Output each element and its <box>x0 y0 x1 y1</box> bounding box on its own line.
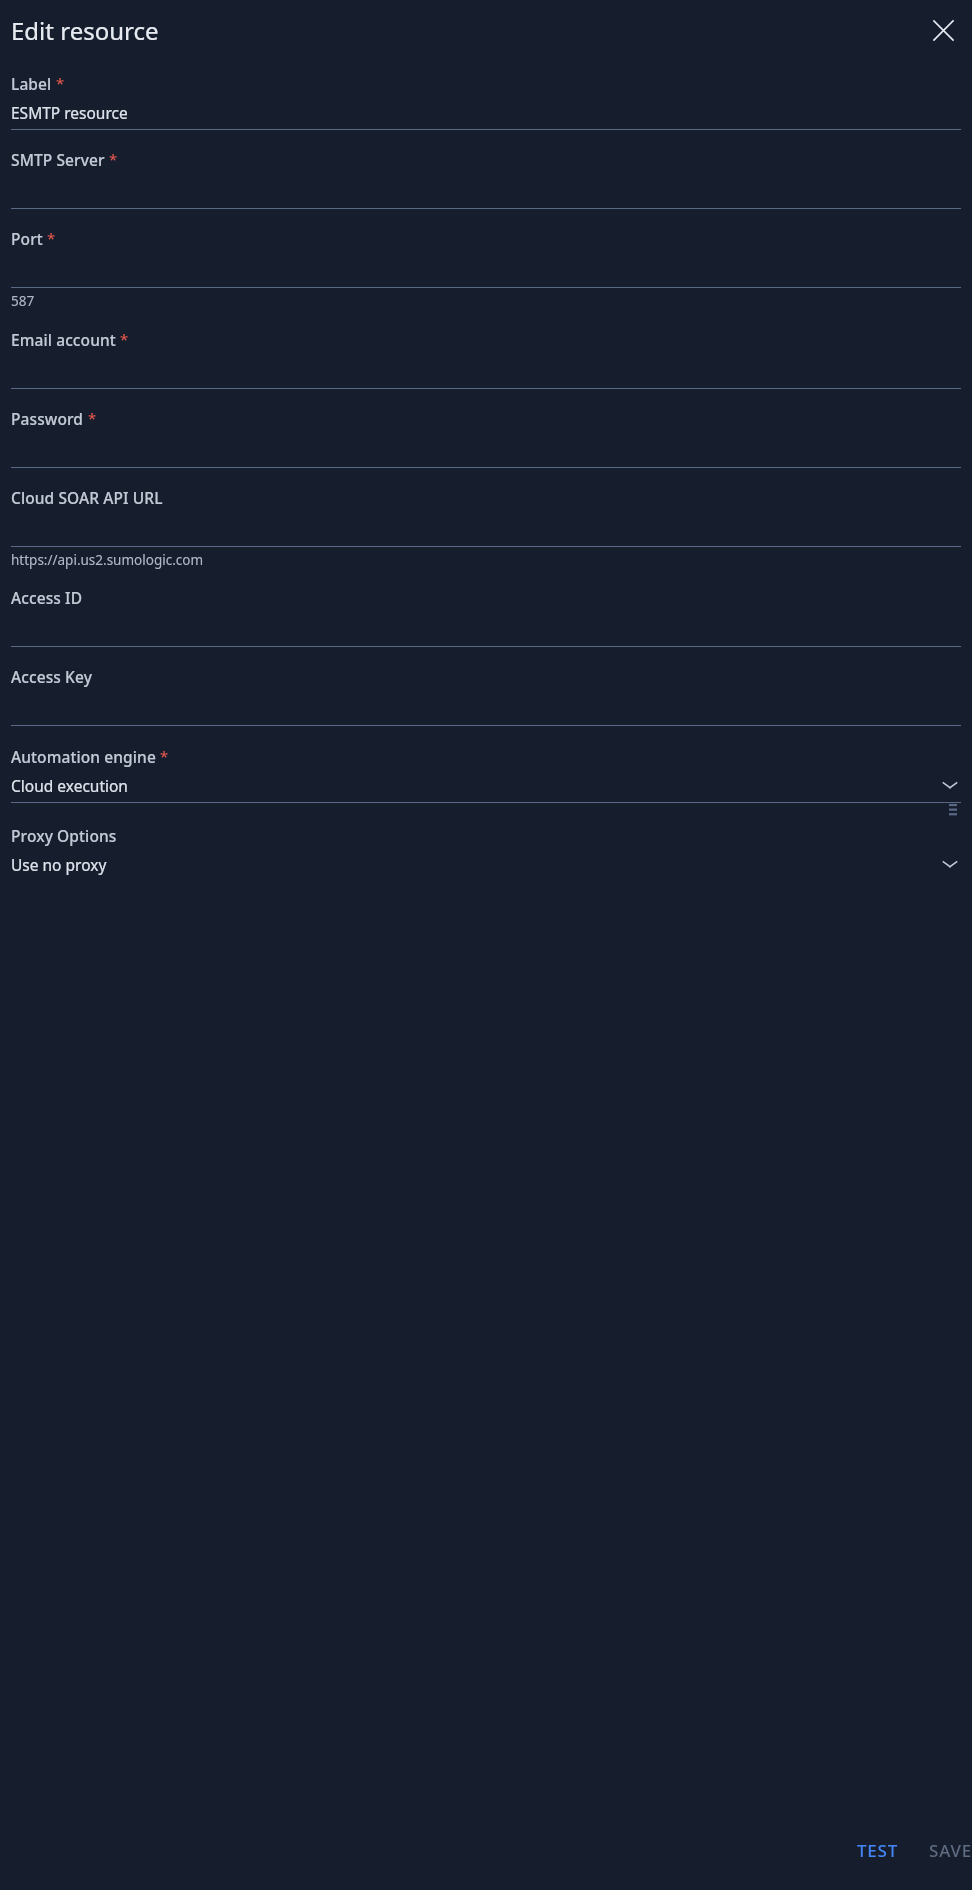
staticText: Proxy Options <box>11 825 117 846</box>
button[interactable]: Access ID <box>11 587 961 647</box>
staticText: Label <box>11 73 52 94</box>
staticText: Access Key <box>11 666 92 687</box>
staticText: Port <box>11 228 43 249</box>
button[interactable]: Access Key <box>11 666 961 726</box>
staticText: * <box>160 746 169 766</box>
staticText: Password <box>11 408 84 429</box>
staticText: * <box>47 228 56 248</box>
button[interactable]: Cloud SOAR API URL <box>11 487 961 569</box>
staticText: Use no proxy <box>11 854 939 875</box>
staticText: TEST <box>857 1839 899 1862</box>
button[interactable]: Port <box>11 228 961 310</box>
button[interactable]: Close <box>922 9 964 51</box>
staticText: Edit resource <box>11 14 922 47</box>
button[interactable]: Use no proxy <box>11 853 961 875</box>
staticText: Automation engine <box>11 746 156 767</box>
staticText: * <box>120 329 129 349</box>
staticText: 587 <box>11 292 35 310</box>
button[interactable]: SMTP Server <box>11 149 961 209</box>
staticText: * <box>88 408 97 428</box>
staticText: * <box>56 73 65 93</box>
button[interactable]: Label <box>11 73 961 130</box>
button[interactable]: Cloud execution <box>11 774 961 796</box>
staticText: SAVE <box>929 1839 972 1862</box>
button[interactable]: TEST <box>843 1831 913 1870</box>
button[interactable]: Password <box>11 408 961 468</box>
button[interactable]: Email account <box>11 329 961 389</box>
staticText: SMTP Server <box>11 149 105 170</box>
staticText: Email account <box>11 329 116 350</box>
staticText: Cloud execution <box>11 775 939 796</box>
staticText: Cloud SOAR API URL <box>11 487 163 508</box>
button[interactable]: SAVE <box>913 1831 972 1870</box>
staticText: ESMTP resource <box>11 102 128 123</box>
staticText: https://api.us2.sumologic.com <box>11 551 204 569</box>
staticText: * <box>109 149 118 169</box>
staticText: Access ID <box>11 587 83 608</box>
